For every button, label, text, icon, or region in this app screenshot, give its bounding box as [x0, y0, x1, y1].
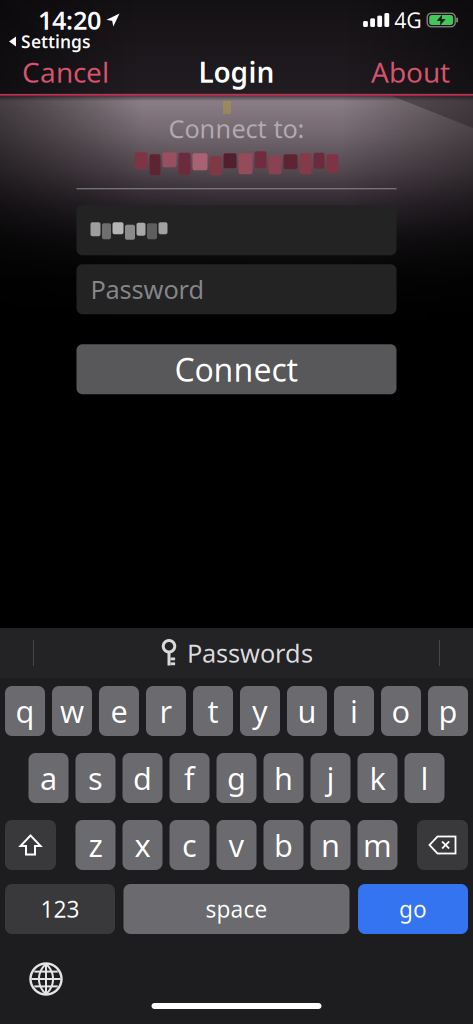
staticText: t [207, 691, 218, 731]
button[interactable]: g [216, 753, 256, 803]
staticText: e [110, 691, 127, 731]
staticText: u [297, 691, 316, 731]
button[interactable]: 123 [5, 884, 115, 934]
button[interactable]: y [240, 686, 280, 736]
button[interactable]: z [75, 820, 115, 870]
button[interactable]: space [123, 884, 349, 934]
button[interactable]: k [357, 753, 397, 803]
button[interactable]: v [216, 820, 256, 870]
staticText: g [227, 758, 246, 798]
staticText: n [321, 825, 340, 865]
button[interactable]: go [358, 884, 468, 934]
staticText: Login [198, 53, 274, 91]
button[interactable]: About [371, 53, 450, 91]
staticText: Cancel [22, 53, 109, 91]
button[interactable]: Connect [76, 344, 396, 394]
staticText: About [371, 53, 450, 91]
button[interactable]: u [287, 686, 327, 736]
staticText: w [60, 691, 84, 731]
button[interactable]: Password [76, 264, 396, 314]
button[interactable]: a [28, 753, 68, 803]
staticText: m [363, 825, 392, 865]
staticText: Password [90, 272, 204, 306]
button[interactable]: Next keyboard [29, 962, 63, 996]
staticText: d [133, 758, 152, 798]
staticText: o [391, 691, 410, 731]
staticText: 123 [40, 894, 79, 924]
staticText: 4G [394, 6, 422, 34]
button[interactable]: h [263, 753, 303, 803]
button[interactable]: w [52, 686, 92, 736]
button[interactable]: i [334, 686, 374, 736]
staticText: p [438, 691, 457, 731]
button[interactable]: s [75, 753, 115, 803]
staticText: space [205, 894, 267, 924]
staticText: j [326, 758, 334, 798]
button[interactable]: o [381, 686, 421, 736]
button[interactable]: b [263, 820, 303, 870]
button[interactable]: Back to Settings [9, 30, 91, 53]
staticText: Passwords [187, 636, 313, 670]
button[interactable]: c [169, 820, 209, 870]
staticText: f [184, 758, 195, 798]
button[interactable]: t [193, 686, 233, 736]
button[interactable]: Shift [5, 820, 56, 870]
button[interactable]: f [169, 753, 209, 803]
staticText: z [88, 825, 102, 865]
staticText: Settings [21, 30, 91, 53]
button[interactable]: e [99, 686, 139, 736]
staticText: l [420, 758, 428, 798]
staticText: x [134, 825, 150, 865]
staticText: v [228, 825, 244, 865]
button[interactable]: r [146, 686, 186, 736]
staticText: go [399, 894, 427, 924]
button[interactable]: Passwords [160, 636, 313, 670]
staticText: h [274, 758, 293, 798]
staticText: q [15, 691, 34, 731]
staticText: r [159, 691, 172, 731]
button[interactable]: j [310, 753, 350, 803]
staticText: k [369, 758, 385, 798]
button[interactable]: d [122, 753, 162, 803]
button[interactable]: x [122, 820, 162, 870]
staticText: y [252, 691, 268, 731]
staticText: c [182, 825, 197, 865]
button[interactable]: l [404, 753, 444, 803]
button[interactable]: m [357, 820, 397, 870]
staticText: a [40, 758, 57, 798]
button[interactable]: Username [76, 205, 396, 255]
staticText: b [274, 825, 293, 865]
staticText: i [350, 691, 358, 731]
button[interactable]: q [5, 686, 45, 736]
button[interactable]: Delete [417, 820, 468, 870]
button[interactable]: Cancel [22, 53, 109, 91]
staticText: Connect [174, 348, 298, 390]
button[interactable]: p [428, 686, 468, 736]
button[interactable]: n [310, 820, 350, 870]
staticText: Connect to: [168, 112, 304, 145]
staticText: s [88, 758, 103, 798]
staticText: 14:20 [38, 3, 101, 37]
